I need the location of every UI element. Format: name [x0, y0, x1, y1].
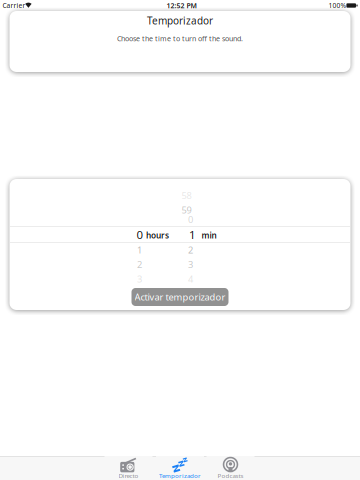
- staticText: 2: [188, 244, 193, 256]
- staticText: Activar temporizador: [134, 291, 225, 303]
- staticText: Temporizador: [147, 14, 213, 27]
- staticText: 0: [136, 227, 143, 242]
- staticText: Podcasts: [217, 471, 243, 480]
- staticText: 1: [137, 244, 142, 256]
- staticText: 3: [188, 258, 193, 271]
- staticText: 0: [188, 213, 193, 226]
- staticText: 4: [188, 273, 193, 285]
- staticText: Choose the time to turn off the sound.: [117, 34, 243, 43]
- staticText: Carrier: [2, 1, 25, 10]
- button[interactable]: Podcasts: [206, 456, 254, 480]
- staticText: Temporizador: [159, 471, 201, 480]
- staticText: 1: [189, 227, 196, 242]
- button[interactable]: Temporizador: [156, 456, 204, 480]
- staticText: 2: [137, 258, 142, 271]
- staticText: min: [201, 230, 216, 241]
- button[interactable]: Activar temporizador: [131, 288, 228, 306]
- staticText: 3: [137, 273, 142, 285]
- staticText: 59: [181, 204, 191, 216]
- staticText: Directo: [118, 471, 138, 480]
- staticText: 100%: [328, 1, 346, 10]
- button[interactable]: Directo: [104, 456, 152, 480]
- staticText: 58: [181, 189, 191, 202]
- staticText: 12:52 PM: [166, 1, 196, 10]
- staticText: hours: [146, 230, 169, 241]
